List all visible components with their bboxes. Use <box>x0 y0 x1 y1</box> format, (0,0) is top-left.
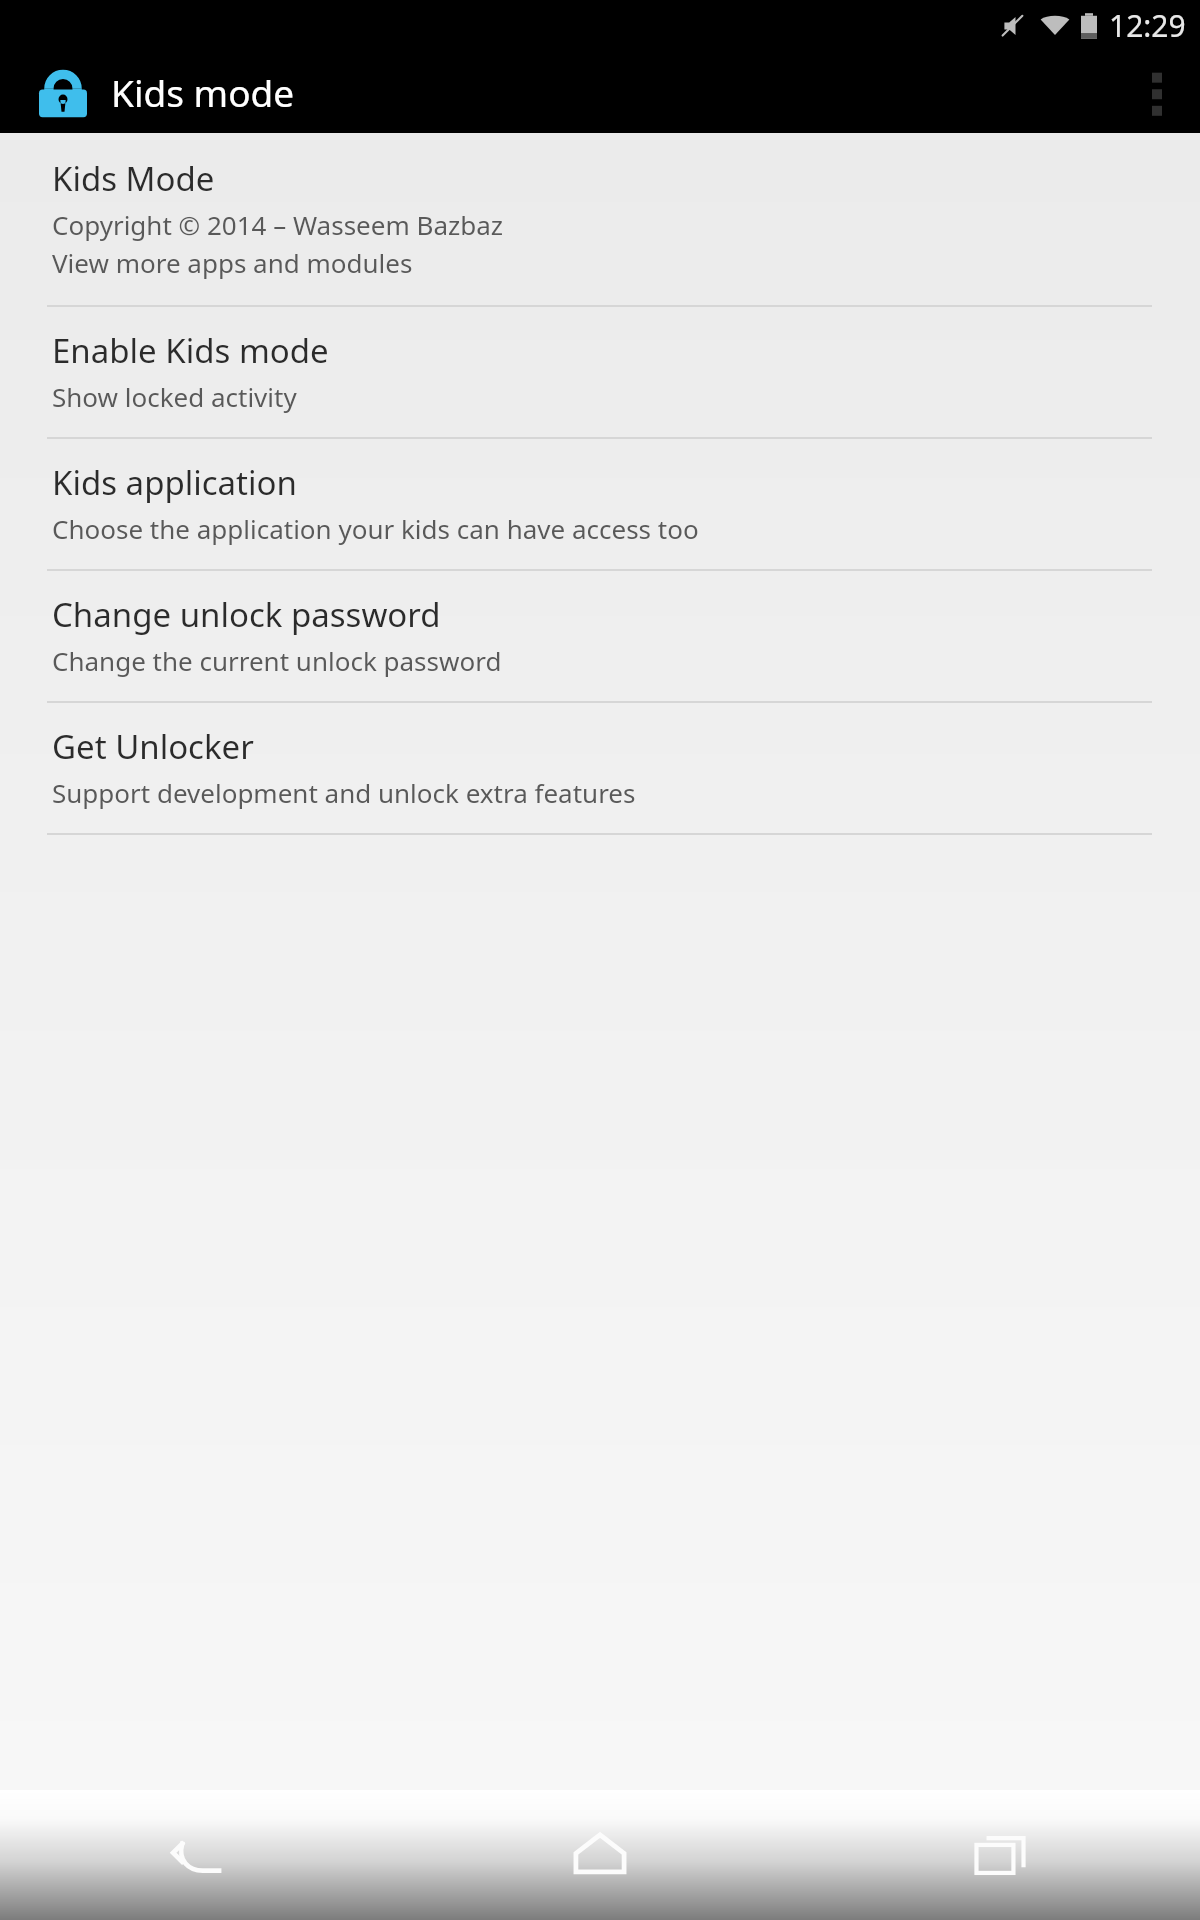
staticText: Show locked activity <box>52 379 297 414</box>
staticText: Get Unlocker <box>52 724 254 769</box>
staticText: Copyright © 2014 – Wasseem Bazbaz <box>52 207 503 242</box>
button[interactable]: Enable Kids mode <box>0 307 1200 437</box>
button[interactable]: More options <box>1114 50 1200 133</box>
button[interactable]: Back <box>0 1790 400 1920</box>
staticText: Support development and unlock extra fea… <box>52 775 636 810</box>
button[interactable]: Recent apps <box>800 1790 1200 1920</box>
button[interactable]: Home <box>400 1790 800 1920</box>
staticText: Kids application <box>52 460 297 505</box>
button[interactable]: Kids application <box>0 439 1200 569</box>
button[interactable]: Kids Mode <box>0 133 1200 305</box>
button[interactable]: Get Unlocker <box>0 703 1200 833</box>
staticText: Change the current unlock password <box>52 643 502 678</box>
staticText: Kids mode <box>111 67 295 117</box>
staticText: Enable Kids mode <box>52 328 329 373</box>
button[interactable]: Change unlock password <box>0 571 1200 701</box>
staticText: Change unlock password <box>52 592 441 637</box>
staticText: Choose the application your kids can hav… <box>52 511 699 546</box>
staticText: View more apps and modules <box>52 245 413 280</box>
staticText: 12:29 <box>1109 5 1186 46</box>
staticText: Kids Mode <box>52 156 215 201</box>
